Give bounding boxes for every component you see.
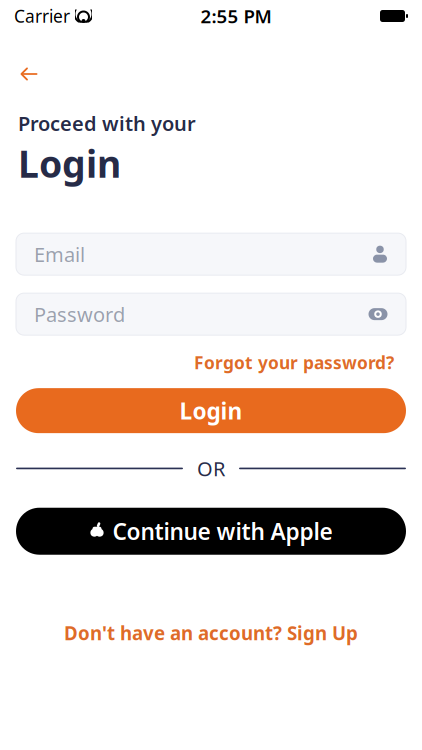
- staticText: Forgot your password?: [194, 351, 394, 374]
- staticText: Email: [34, 241, 85, 267]
- button[interactable]: Login: [16, 388, 406, 433]
- staticText: Carrier: [14, 4, 70, 27]
- button[interactable]: Continue with Apple: [16, 508, 406, 555]
- button[interactable]: Forgot your password?: [194, 345, 394, 380]
- button[interactable]: Don't have an account? Sign Up: [54, 613, 368, 653]
- staticText: Proceed with your: [18, 110, 196, 137]
- staticText: Password: [34, 301, 125, 327]
- staticText: Continue with Apple: [112, 516, 332, 546]
- staticText: Don't have an account? Sign Up: [64, 621, 358, 645]
- staticText: Login: [179, 396, 242, 426]
- staticText: OR: [197, 455, 225, 482]
- button[interactable]: Back: [0, 54, 58, 94]
- staticText: 2:55 PM: [200, 4, 271, 28]
- staticText: Login: [18, 139, 121, 188]
